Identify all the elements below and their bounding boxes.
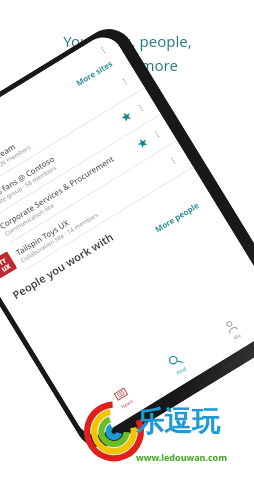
staticText: Private group · 58 members [0, 163, 58, 212]
staticText: 乐逗玩 [136, 404, 220, 439]
button[interactable]: Corporate Services & Procurement [0, 114, 177, 262]
staticText: Me [232, 332, 243, 342]
staticText: files and more [77, 55, 178, 75]
staticText: Collaboration site · 14 members [19, 211, 100, 264]
button[interactable]: More sites [70, 53, 119, 92]
staticText: More people [153, 199, 201, 234]
staticText: Team site · 26 members [0, 143, 32, 185]
button[interactable]: Find [160, 346, 196, 383]
staticText: Find [175, 365, 188, 377]
button[interactable]: Favorite [120, 110, 133, 124]
staticText: Communication site [3, 201, 56, 238]
button[interactable]: More options [133, 100, 149, 116]
staticText: News [120, 398, 135, 411]
staticText: Corporate Services & Procurement [0, 153, 116, 231]
button[interactable]: More people [149, 195, 205, 239]
button[interactable]: Contoso Team [0, 61, 145, 210]
button[interactable]: More options [95, 42, 111, 58]
staticText: People you work with [9, 229, 116, 302]
button[interactable]: More options [116, 73, 133, 90]
button[interactable]: More options [149, 126, 165, 143]
staticText: Contoso Team [0, 140, 17, 178]
staticText: Sales fans @ Contoso [0, 153, 57, 205]
button[interactable]: News [105, 379, 141, 416]
button[interactable]: Favorite [136, 136, 150, 150]
staticText: TT UX [0, 256, 12, 274]
staticText: Your sites, people, [63, 31, 192, 51]
staticText: Tailspin Toys UX [13, 216, 71, 258]
button[interactable]: More options [165, 153, 182, 169]
staticText: www.ledouwan.com [136, 451, 228, 463]
button[interactable]: Me [215, 312, 251, 349]
button[interactable]: Sales fans @ Contoso [0, 88, 161, 236]
button[interactable]: TT UX [0, 141, 194, 289]
staticText: More sites [74, 57, 114, 88]
